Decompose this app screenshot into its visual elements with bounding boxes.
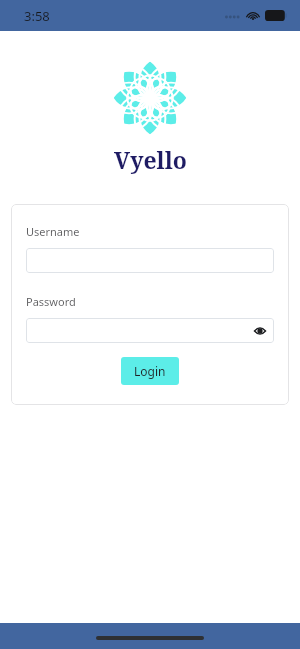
button[interactable]: Show password [26,318,274,343]
button[interactable]: Login [121,357,179,385]
button[interactable]: Show password [253,324,267,338]
button[interactable] [26,248,274,273]
staticText: Password [26,294,76,309]
staticText: 3:58 [24,7,50,25]
staticText: Vyello [114,144,187,175]
staticText: Username [26,224,80,239]
staticText: Login [134,363,166,379]
